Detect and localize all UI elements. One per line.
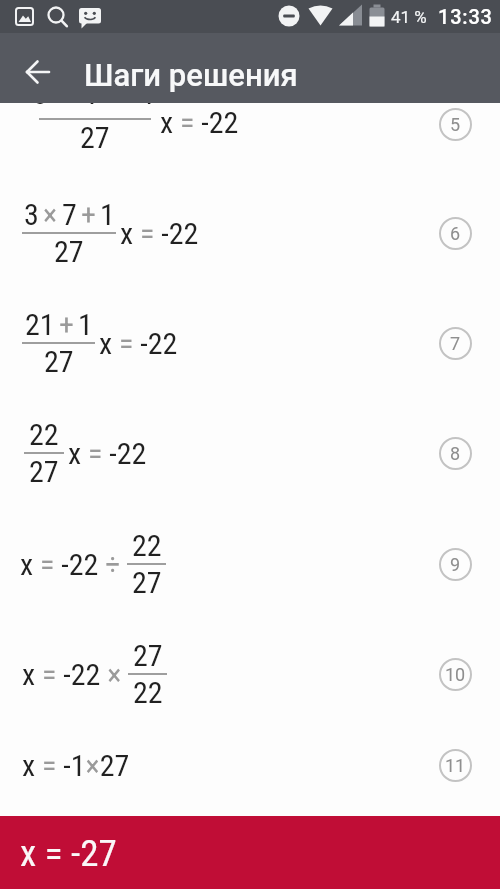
button[interactable]: 21: [0, 293, 500, 393]
staticText: 27: [29, 454, 59, 489]
staticText: x = -27: [20, 832, 117, 875]
staticText: 22: [133, 675, 163, 710]
staticText: x = -22 ÷: [20, 547, 121, 582]
staticText: 11: [445, 755, 466, 776]
staticText: 22: [132, 528, 162, 563]
staticText: x = -22 ×: [22, 657, 122, 692]
staticText: 1: [100, 197, 115, 232]
staticText: x = -22: [99, 326, 178, 361]
staticText: +: [114, 76, 129, 111]
staticText: ×: [60, 76, 75, 111]
staticText: +: [59, 307, 74, 342]
staticText: 22: [29, 417, 59, 452]
staticText: 13:33: [438, 5, 493, 28]
staticText: Шаги решения: [84, 57, 298, 93]
staticText: 5: [450, 114, 461, 135]
button[interactable]: [10, 44, 66, 100]
staticText: 3: [33, 76, 48, 111]
staticText: 27: [133, 638, 163, 673]
staticText: 21: [25, 307, 55, 342]
button[interactable]: x = -22 ÷: [0, 514, 500, 614]
button[interactable]: 3: [0, 69, 500, 169]
staticText: 27: [132, 565, 162, 600]
staticText: 27: [80, 120, 110, 155]
button[interactable]: x = -27: [0, 816, 500, 889]
staticText: ×: [43, 197, 58, 232]
staticText: 27: [54, 234, 84, 269]
staticText: 7: [450, 333, 461, 354]
staticText: 9: [450, 554, 461, 575]
staticText: 7: [87, 76, 102, 111]
staticText: +: [81, 197, 96, 232]
staticText: 41 %: [391, 7, 427, 27]
staticText: 6: [450, 223, 461, 244]
staticText: x = -22: [68, 436, 147, 471]
staticText: x = -1×27: [22, 748, 130, 783]
staticText: x = -22: [160, 105, 239, 140]
staticText: 7: [62, 197, 77, 232]
button[interactable]: x = -22 ×: [0, 624, 500, 724]
button[interactable]: 22: [0, 403, 500, 503]
button[interactable]: 3: [0, 183, 500, 283]
staticText: 27: [44, 344, 74, 379]
button[interactable]: x = -1×27: [0, 715, 500, 815]
staticText: 3: [24, 197, 39, 232]
staticText: 1: [78, 307, 93, 342]
staticText: 10: [445, 664, 466, 685]
staticText: x = -22: [120, 216, 199, 251]
staticText: 8: [450, 443, 461, 464]
staticText: 1: [141, 76, 156, 111]
